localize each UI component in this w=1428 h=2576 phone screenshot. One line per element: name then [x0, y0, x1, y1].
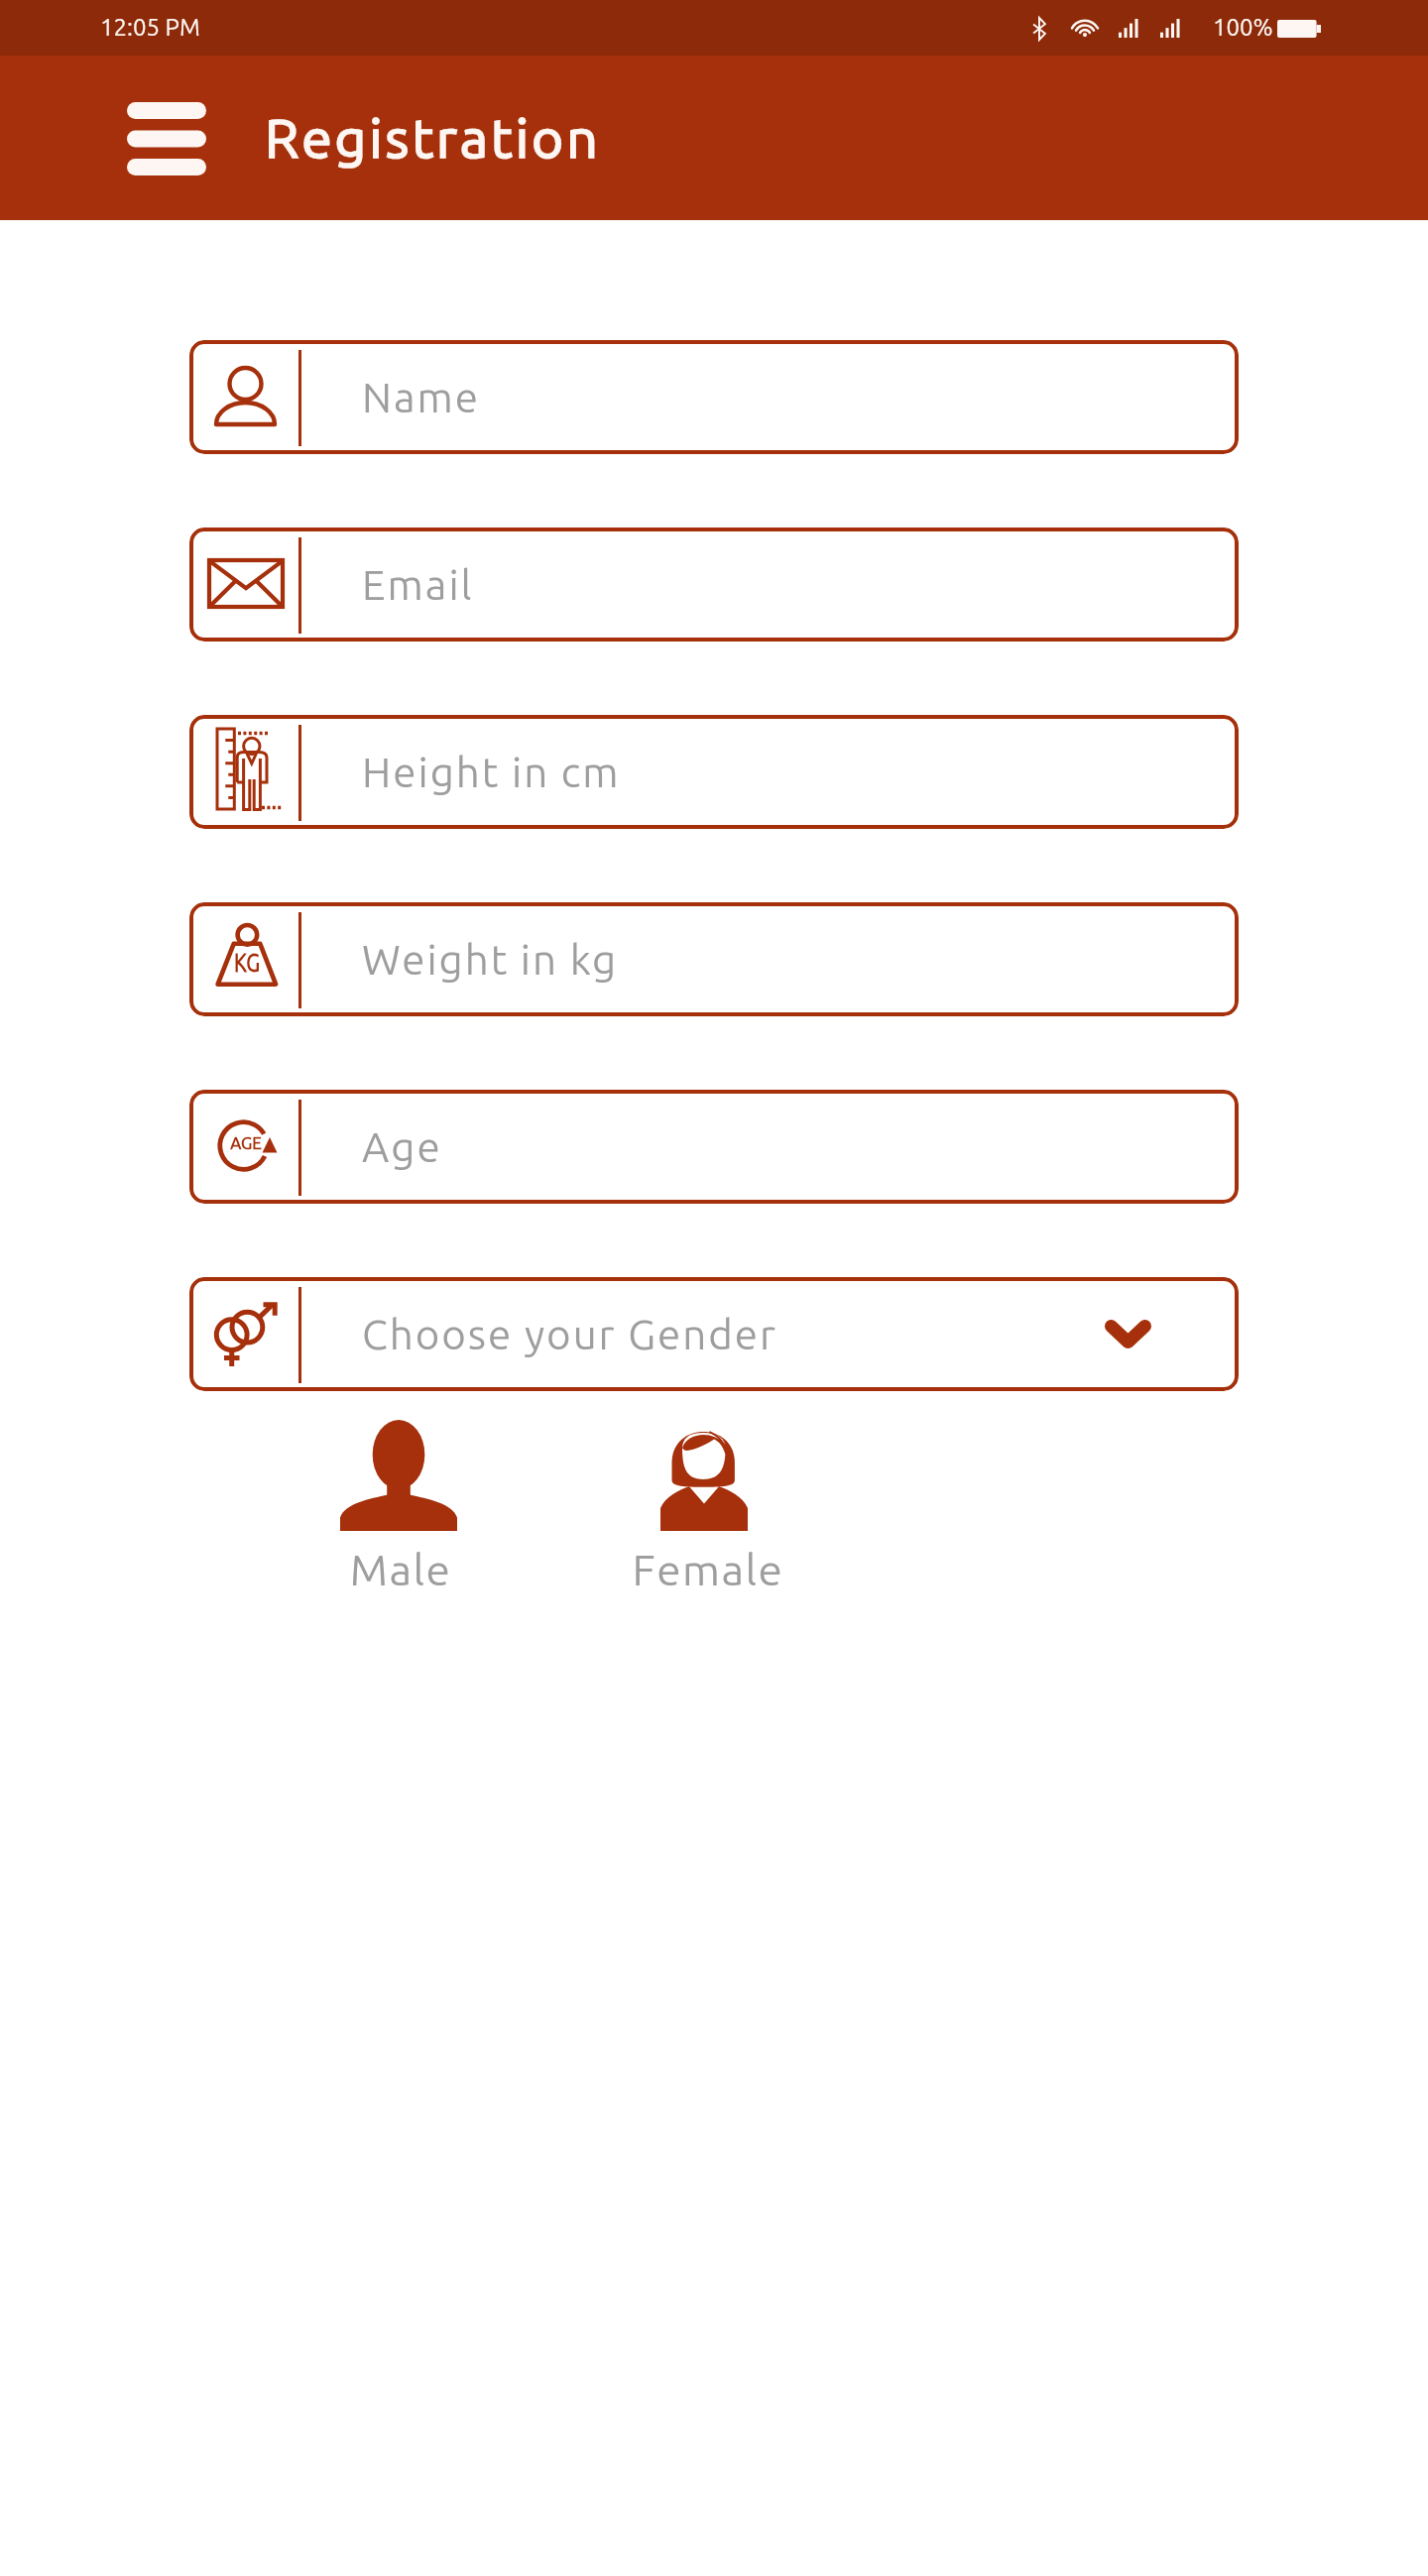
staticText: Choose your Gender [362, 1311, 777, 1357]
staticText: Registration [265, 107, 601, 169]
button[interactable]: Female [635, 1420, 853, 1588]
button[interactable]: Open navigation menu [112, 96, 221, 180]
staticText: 12:05 PM [100, 14, 200, 41]
staticText: KG [226, 948, 268, 977]
button[interactable]: Name [189, 340, 1239, 454]
staticText: Name [362, 374, 481, 420]
staticText: Female [617, 1545, 799, 1593]
button[interactable]: KG [189, 902, 1239, 1016]
staticText: Height in cm [362, 749, 621, 795]
staticText: Age [362, 1123, 442, 1170]
staticText: AGE [225, 1133, 267, 1152]
button[interactable]: Choose your Gender [189, 1277, 1239, 1391]
button[interactable]: AGE [189, 1090, 1239, 1204]
staticText: Email [362, 561, 474, 608]
staticText: Weight in kg [362, 936, 619, 983]
button[interactable]: Open gender dropdown [1085, 1300, 1171, 1368]
staticText: Male [342, 1545, 459, 1593]
button[interactable]: Male [340, 1420, 558, 1588]
button[interactable]: Height in cm [189, 715, 1239, 829]
staticText: 100% [1213, 14, 1273, 41]
button[interactable]: Email [189, 527, 1239, 642]
